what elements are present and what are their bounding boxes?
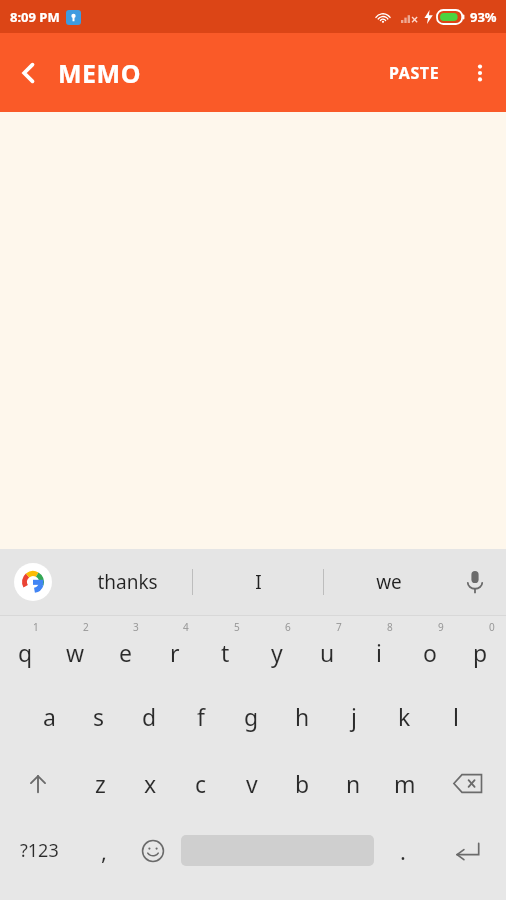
button[interactable]: More options (454, 47, 506, 99)
button[interactable]: Emoji (128, 817, 177, 884)
button[interactable]: d (124, 683, 175, 750)
staticText: 0 (489, 620, 495, 634)
staticText: we (376, 569, 402, 595)
staticText: 93% (470, 8, 497, 26)
button[interactable]: Voice input (454, 561, 496, 603)
staticText: , (101, 836, 107, 866)
button[interactable]: i (353, 616, 404, 683)
staticText: q (18, 637, 33, 668)
staticText: s (93, 701, 105, 732)
staticText: a (43, 701, 56, 732)
button[interactable]: t (200, 616, 251, 683)
button[interactable]: I (193, 549, 323, 615)
button[interactable]: n (328, 750, 379, 817)
button[interactable]: x (125, 750, 175, 817)
button[interactable]: p (455, 616, 506, 683)
staticText: . (400, 836, 406, 866)
staticText: v (246, 768, 258, 799)
button[interactable]: Shift (0, 750, 75, 817)
staticText: y (271, 637, 283, 668)
button[interactable]: f (175, 683, 226, 750)
staticText: r (170, 637, 180, 668)
button[interactable]: thanks (62, 549, 192, 615)
staticText: 2 (83, 620, 89, 634)
button[interactable]: Back (0, 44, 58, 102)
staticText: MEMO (58, 56, 141, 90)
button[interactable]: s (74, 683, 124, 750)
staticText: o (423, 637, 437, 668)
button[interactable]: z (75, 750, 125, 817)
staticText: PASTE (389, 62, 440, 84)
staticText: x (144, 768, 157, 799)
button[interactable]: k (379, 683, 430, 750)
button[interactable]: Backspace (430, 750, 506, 817)
staticText: 6 (285, 620, 291, 634)
button[interactable]: h (277, 683, 328, 750)
staticText: f (197, 701, 205, 732)
button[interactable]: m (379, 750, 430, 817)
button[interactable]: Enter (427, 817, 506, 884)
staticText: h (295, 701, 310, 732)
staticText: w (66, 637, 85, 668)
staticText: 8 (387, 620, 393, 634)
button[interactable]: ?123 (0, 817, 79, 884)
staticText: t (221, 637, 230, 668)
staticText: 4 (183, 620, 189, 634)
staticText: j (351, 701, 357, 732)
button[interactable]: we (324, 549, 454, 615)
button[interactable]: o (404, 616, 455, 683)
button[interactable]: a (24, 683, 74, 750)
staticText: k (398, 701, 411, 732)
staticText: l (453, 701, 459, 732)
staticText: i (376, 637, 382, 668)
staticText: z (95, 768, 106, 799)
button[interactable]: j (328, 683, 379, 750)
staticText: 5 (234, 620, 240, 634)
staticText: u (320, 637, 335, 668)
button[interactable]: Google (12, 561, 54, 603)
staticText: ?123 (20, 838, 59, 863)
staticText: 9 (438, 620, 444, 634)
staticText: e (119, 637, 132, 668)
button[interactable]: y (251, 616, 302, 683)
staticText: b (295, 768, 310, 799)
button[interactable]: e (100, 616, 150, 683)
button[interactable]: q (0, 616, 50, 683)
button[interactable]: g (226, 683, 277, 750)
button[interactable]: b (277, 750, 328, 817)
button[interactable]: , (79, 817, 128, 884)
button[interactable]: PASTE (375, 44, 454, 102)
staticText: d (142, 701, 157, 732)
button[interactable]: . (378, 817, 427, 884)
button[interactable]: l (430, 683, 481, 750)
button[interactable]: Space (177, 817, 378, 884)
button[interactable]: r (150, 616, 200, 683)
staticText: I (255, 569, 262, 595)
staticText: thanks (97, 569, 158, 595)
staticText: 7 (336, 620, 342, 634)
staticText: 3 (133, 620, 139, 634)
button[interactable]: u (302, 616, 353, 683)
button[interactable]: c (175, 750, 226, 817)
staticText: n (346, 768, 361, 799)
staticText: c (195, 768, 207, 799)
button[interactable]: v (226, 750, 277, 817)
staticText: 1 (33, 620, 39, 634)
staticText: 8:09 PM (10, 8, 60, 26)
button[interactable]: w (50, 616, 100, 683)
staticText: p (473, 637, 488, 668)
staticText: m (394, 768, 416, 799)
staticText: g (244, 701, 259, 732)
